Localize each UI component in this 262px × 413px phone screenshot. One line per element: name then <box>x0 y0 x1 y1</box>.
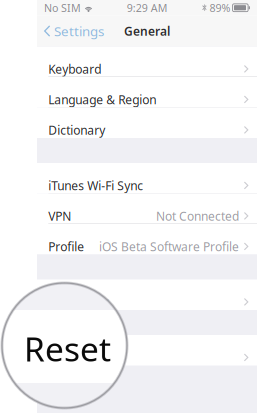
staticText: 9:29 AM <box>127 1 168 15</box>
staticText: VPN <box>48 208 71 224</box>
staticText: Language & Region <box>48 92 156 107</box>
button[interactable]: Profile <box>37 224 257 254</box>
staticText: Reset <box>24 326 111 371</box>
staticText: Profile <box>48 239 84 254</box>
staticText: No SIM <box>44 1 81 15</box>
button[interactable]: Language & Region <box>37 77 257 107</box>
staticText: Regulatory <box>48 294 108 310</box>
button[interactable]: Reset <box>37 335 257 365</box>
staticText: 89% <box>209 1 230 15</box>
staticText: iTunes Wi-Fi Sync <box>48 178 143 193</box>
button[interactable]: Keyboard <box>37 46 257 77</box>
staticText: General <box>124 23 170 39</box>
button[interactable]: Settings <box>43 15 110 47</box>
staticText: Reset <box>48 350 79 365</box>
staticText: Not Connected <box>156 208 239 224</box>
button[interactable]: Regulatory <box>37 279 257 310</box>
staticText: Keyboard <box>48 61 101 77</box>
staticText: Dictionary <box>48 122 105 138</box>
button[interactable]: VPN <box>37 193 257 224</box>
staticText: Settings <box>54 22 104 40</box>
button[interactable]: iTunes Wi-Fi Sync <box>37 163 257 193</box>
staticText: iOS Beta Software Profile <box>99 239 239 254</box>
button[interactable]: Dictionary <box>37 107 257 138</box>
